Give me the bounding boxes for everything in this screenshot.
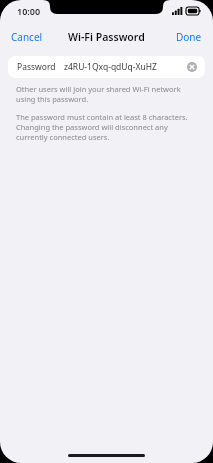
button[interactable]: Clear text xyxy=(186,61,198,73)
staticText: Wi-Fi Password xyxy=(68,30,145,44)
staticText: Cancel xyxy=(11,30,43,44)
button[interactable]: Done xyxy=(165,25,213,49)
staticText: Password xyxy=(17,61,56,73)
staticText: Other users will join your shared Wi-Fi … xyxy=(16,84,197,104)
staticText: The password must contain at least 8 cha… xyxy=(16,112,197,142)
staticText: z4RU-1Qxq-qdUq-XuHZ xyxy=(64,61,157,73)
staticText: Done xyxy=(176,30,202,44)
button[interactable]: Password xyxy=(8,56,205,78)
staticText: 10:00 xyxy=(17,5,41,17)
button[interactable]: Cancel xyxy=(0,25,54,49)
